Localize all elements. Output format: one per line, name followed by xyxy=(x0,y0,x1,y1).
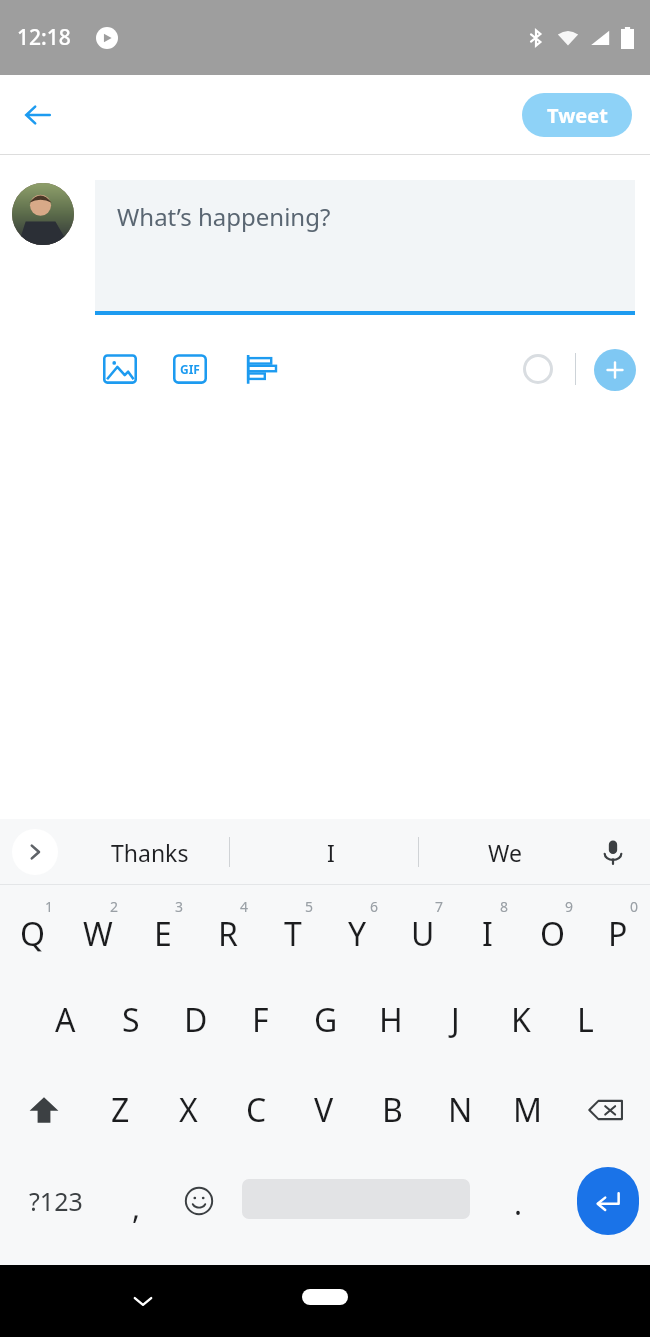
staticText: W xyxy=(83,912,113,956)
button[interactable]: T xyxy=(260,885,325,975)
button[interactable]: C xyxy=(222,1065,290,1155)
button[interactable]: H xyxy=(358,975,423,1065)
staticText: GIF xyxy=(180,361,200,377)
staticText: P xyxy=(608,912,628,956)
button[interactable]: Home xyxy=(302,1289,348,1305)
button[interactable]: P xyxy=(585,885,650,975)
button[interactable]: R xyxy=(195,885,260,975)
staticText: R xyxy=(218,912,238,956)
button[interactable]: S xyxy=(98,975,163,1065)
button[interactable]: M xyxy=(494,1065,562,1155)
button[interactable]: K xyxy=(488,975,553,1065)
button[interactable]: , xyxy=(103,1155,169,1247)
staticText: H xyxy=(379,998,403,1042)
button[interactable]: F xyxy=(228,975,293,1065)
button[interactable]: X xyxy=(154,1065,222,1155)
button[interactable]: G xyxy=(293,975,358,1065)
staticText: V xyxy=(314,1088,334,1132)
staticText: U xyxy=(411,912,435,956)
staticText: 6 xyxy=(370,897,379,916)
staticText: O xyxy=(540,912,565,956)
staticText: 8 xyxy=(500,897,509,916)
button[interactable]: ?123 xyxy=(8,1155,103,1247)
button[interactable]: O xyxy=(520,885,585,975)
button[interactable]: Add photo xyxy=(96,345,144,393)
button[interactable]: Voice input xyxy=(588,827,638,877)
staticText: Z xyxy=(111,1088,130,1132)
staticText: M xyxy=(513,1088,543,1132)
staticText: S xyxy=(122,998,140,1042)
button[interactable]: Hide keyboard xyxy=(115,1273,171,1329)
staticText: Tweet xyxy=(547,102,608,129)
button[interactable]: D xyxy=(163,975,228,1065)
staticText: T xyxy=(284,912,302,956)
button[interactable]: U xyxy=(390,885,455,975)
staticText: G xyxy=(314,998,338,1042)
staticText: 9 xyxy=(565,897,574,916)
staticText: 3 xyxy=(175,897,184,916)
staticText: 5 xyxy=(305,897,314,916)
button[interactable]: Enter xyxy=(577,1167,639,1235)
button[interactable]: . xyxy=(480,1155,556,1247)
button[interactable]: N xyxy=(426,1065,494,1155)
staticText: A xyxy=(55,998,76,1042)
staticText: F xyxy=(252,998,269,1042)
staticText: 12:18 xyxy=(17,23,71,52)
button[interactable]: Back xyxy=(10,87,66,143)
staticText: 2 xyxy=(110,897,119,916)
staticText: What’s happening? xyxy=(117,200,331,233)
staticText: E xyxy=(154,912,172,956)
button[interactable]: More suggestions xyxy=(12,829,58,875)
button[interactable]: Add tweet xyxy=(594,349,636,391)
button[interactable]: Add poll xyxy=(236,345,284,393)
staticText: Thanks xyxy=(111,837,189,868)
button[interactable]: Y xyxy=(325,885,390,975)
staticText: N xyxy=(448,1088,473,1132)
button[interactable]: J xyxy=(423,975,488,1065)
staticText: 7 xyxy=(435,897,444,916)
staticText: J xyxy=(451,998,460,1042)
staticText: X xyxy=(179,1088,198,1132)
button[interactable]: B xyxy=(358,1065,426,1155)
button[interactable]: Add GIF xyxy=(166,345,214,393)
button[interactable]: E xyxy=(130,885,195,975)
button[interactable]: Backspace xyxy=(562,1065,650,1155)
staticText: ?123 xyxy=(29,1184,83,1218)
staticText: D xyxy=(184,998,208,1042)
staticText: B xyxy=(382,1088,403,1132)
button[interactable]: What’s happening? xyxy=(95,180,635,313)
button[interactable]: Profile photo xyxy=(12,183,74,245)
staticText: Y xyxy=(348,912,367,956)
button[interactable]: Shift xyxy=(0,1065,87,1155)
button[interactable]: A xyxy=(32,975,98,1065)
staticText: K xyxy=(511,998,531,1042)
button[interactable]: We xyxy=(430,819,580,885)
button[interactable]: Z xyxy=(87,1065,154,1155)
button[interactable]: Character count xyxy=(518,349,558,389)
button[interactable]: I xyxy=(246,819,416,885)
staticText: 4 xyxy=(240,897,249,916)
button[interactable]: Thanks xyxy=(72,819,227,885)
staticText: I xyxy=(327,837,335,868)
staticText: L xyxy=(577,998,594,1042)
button[interactable]: Q xyxy=(0,885,65,975)
staticText: We xyxy=(488,837,522,868)
button[interactable]: I xyxy=(455,885,520,975)
staticText: 0 xyxy=(630,897,639,916)
staticText: . xyxy=(514,1183,523,1224)
staticText: C xyxy=(246,1088,267,1132)
staticText: , xyxy=(132,1187,141,1228)
button[interactable]: Tweet xyxy=(522,93,632,137)
staticText: 1 xyxy=(45,897,54,916)
button[interactable]: W xyxy=(65,885,130,975)
button[interactable]: Emoji xyxy=(169,1155,229,1247)
button[interactable]: L xyxy=(553,975,618,1065)
button[interactable]: V xyxy=(290,1065,358,1155)
staticText: Q xyxy=(20,912,45,956)
staticText: I xyxy=(482,912,493,956)
